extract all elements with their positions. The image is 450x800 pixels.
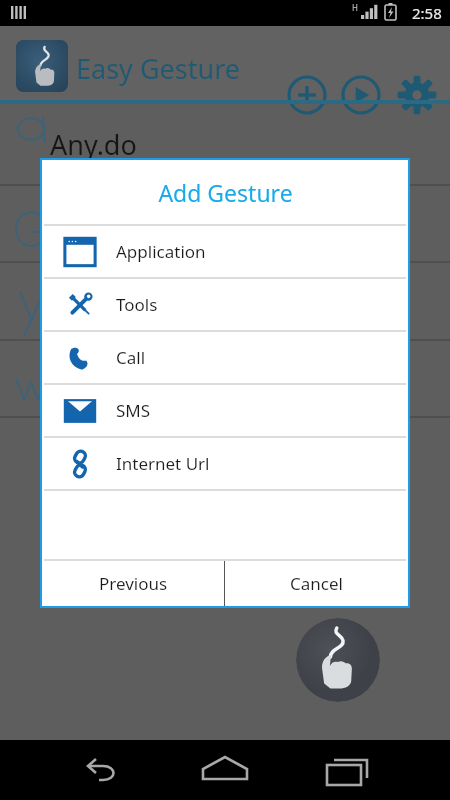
button[interactable]: Play [338,72,384,118]
button[interactable]: Cancel [225,561,408,606]
staticText: 2:58 [412,3,442,23]
button[interactable]: Start gesture capture [296,618,380,702]
button[interactable]: Call [42,332,408,383]
staticText: Previous [99,572,168,595]
staticText: Application [116,240,206,263]
button[interactable]: Home [180,740,270,800]
staticText: SMS [116,399,151,422]
staticText: Any.do [50,126,137,163]
staticText: Add Gesture [158,177,293,208]
staticText: Internet Url [116,452,210,475]
button[interactable]: Recent apps [300,740,390,800]
staticText: Easy Gesture [76,50,240,87]
button[interactable]: Application [42,226,408,277]
button[interactable]: SMS [42,385,408,436]
button[interactable]: Internet Url [42,438,408,489]
staticText: Tools [116,293,158,316]
button[interactable]: Previous [42,561,224,606]
staticText: Call [116,346,146,369]
button[interactable]: Settings [394,72,440,118]
staticText: H [352,2,358,13]
button[interactable]: Tools [42,279,408,330]
button[interactable]: Back [60,740,150,800]
button[interactable]: Add gesture [284,72,330,118]
staticText: Cancel [290,572,343,595]
button[interactable]: Easy Gesture [16,40,68,92]
